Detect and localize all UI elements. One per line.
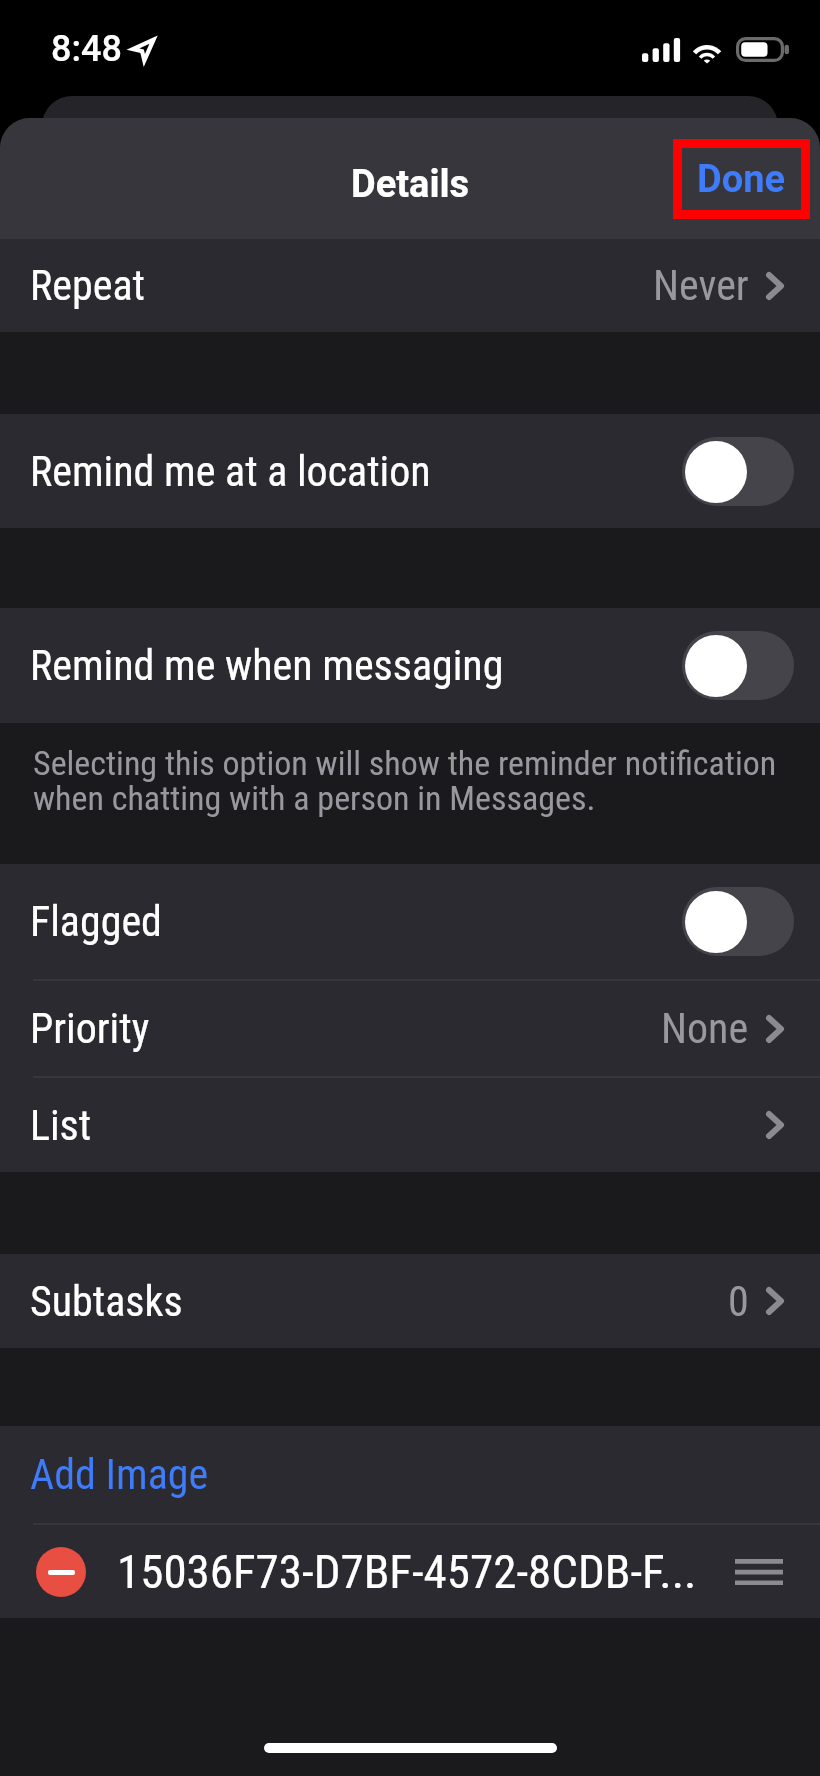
staticText: Details: [351, 162, 470, 207]
staticText: Done: [697, 157, 786, 202]
staticText: Flagged: [30, 897, 162, 946]
button[interactable]: Remind me at a location: [0, 414, 820, 528]
staticText: 15036F73-D7BF-4572-8CDB-F...: [117, 1544, 697, 1599]
staticText: Subtasks: [30, 1277, 183, 1326]
button[interactable]: Reorder: [735, 1559, 783, 1585]
button[interactable]: Flagged: [0, 864, 820, 979]
button[interactable]: Repeat: [0, 239, 820, 332]
button[interactable]: Toggle off: [682, 887, 794, 956]
staticText: List: [30, 1101, 92, 1150]
staticText: Never: [653, 261, 749, 310]
staticText: Selecting this option will show the remi…: [33, 743, 804, 818]
staticText: None: [661, 1004, 749, 1053]
staticText: Priority: [30, 1004, 150, 1053]
button[interactable]: Remove attachment: [36, 1547, 86, 1597]
staticText: 0: [728, 1277, 749, 1326]
button[interactable]: Subtasks: [0, 1254, 820, 1348]
button[interactable]: Remind me when messaging: [0, 608, 820, 723]
button[interactable]: Priority: [0, 981, 820, 1076]
button[interactable]: Toggle off: [682, 437, 794, 506]
staticText: Repeat: [30, 261, 145, 310]
staticText: Add Image: [30, 1450, 209, 1499]
button[interactable]: Toggle off: [682, 631, 794, 700]
staticText: Remind me when messaging: [30, 641, 504, 690]
button[interactable]: Done: [673, 139, 810, 219]
staticText: Remind me at a location: [30, 447, 431, 496]
button[interactable]: Add Image: [0, 1426, 820, 1523]
staticText: 8:48: [51, 28, 122, 70]
button[interactable]: List: [0, 1078, 820, 1172]
button[interactable]: Remove attachment: [0, 1525, 820, 1618]
